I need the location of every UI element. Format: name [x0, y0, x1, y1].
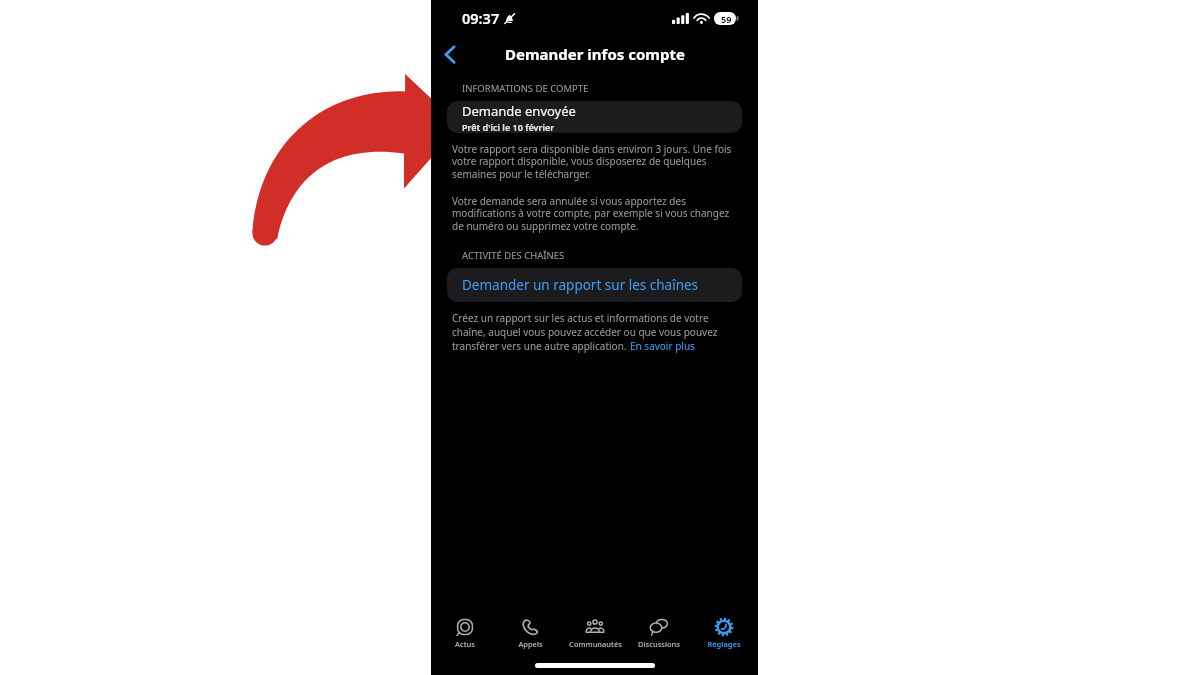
button[interactable]: Appels — [499, 615, 561, 651]
staticText: 59 — [721, 13, 732, 25]
staticText: ACTIVITÉ DES CHAÎNES — [462, 249, 565, 262]
button[interactable]: Réglages — [693, 615, 755, 651]
button[interactable]: Demander un rapport sur les chaînes — [447, 268, 742, 302]
staticText: Votre rapport sera disponible dans envir… — [452, 142, 732, 181]
staticText: transférer vers une autre application. — [452, 339, 630, 353]
button[interactable]: Demande envoyée — [447, 101, 742, 133]
button[interactable]: Discussions — [628, 615, 690, 651]
staticText: Votre demande sera annulée si vous appor… — [452, 194, 732, 233]
staticText: Communautés — [569, 639, 622, 649]
button[interactable]: Actus — [434, 615, 496, 651]
staticText: Réglages — [707, 639, 741, 649]
button[interactable]: En savoir plus — [630, 339, 695, 353]
staticText: Demande envoyée — [462, 102, 576, 120]
staticText: 09:37 — [462, 8, 500, 28]
staticText: Demander infos compte — [505, 44, 685, 64]
staticText: Prêt d'ici le 10 février — [462, 121, 555, 133]
staticText: Actus — [455, 639, 475, 649]
staticText: Créez un rapport sur les actus et inform… — [452, 311, 709, 325]
button[interactable]: Back — [431, 36, 467, 72]
staticText: chaîne, auquel vous pouvez accéder ou qu… — [452, 325, 718, 339]
staticText: Appels — [518, 639, 543, 649]
staticText: En savoir plus — [630, 339, 695, 353]
button[interactable]: Communautés — [564, 615, 626, 651]
staticText: Demander un rapport sur les chaînes — [462, 276, 699, 294]
staticText: Discussions — [638, 639, 680, 649]
staticText: INFORMATIONS DE COMPTE — [462, 82, 589, 95]
